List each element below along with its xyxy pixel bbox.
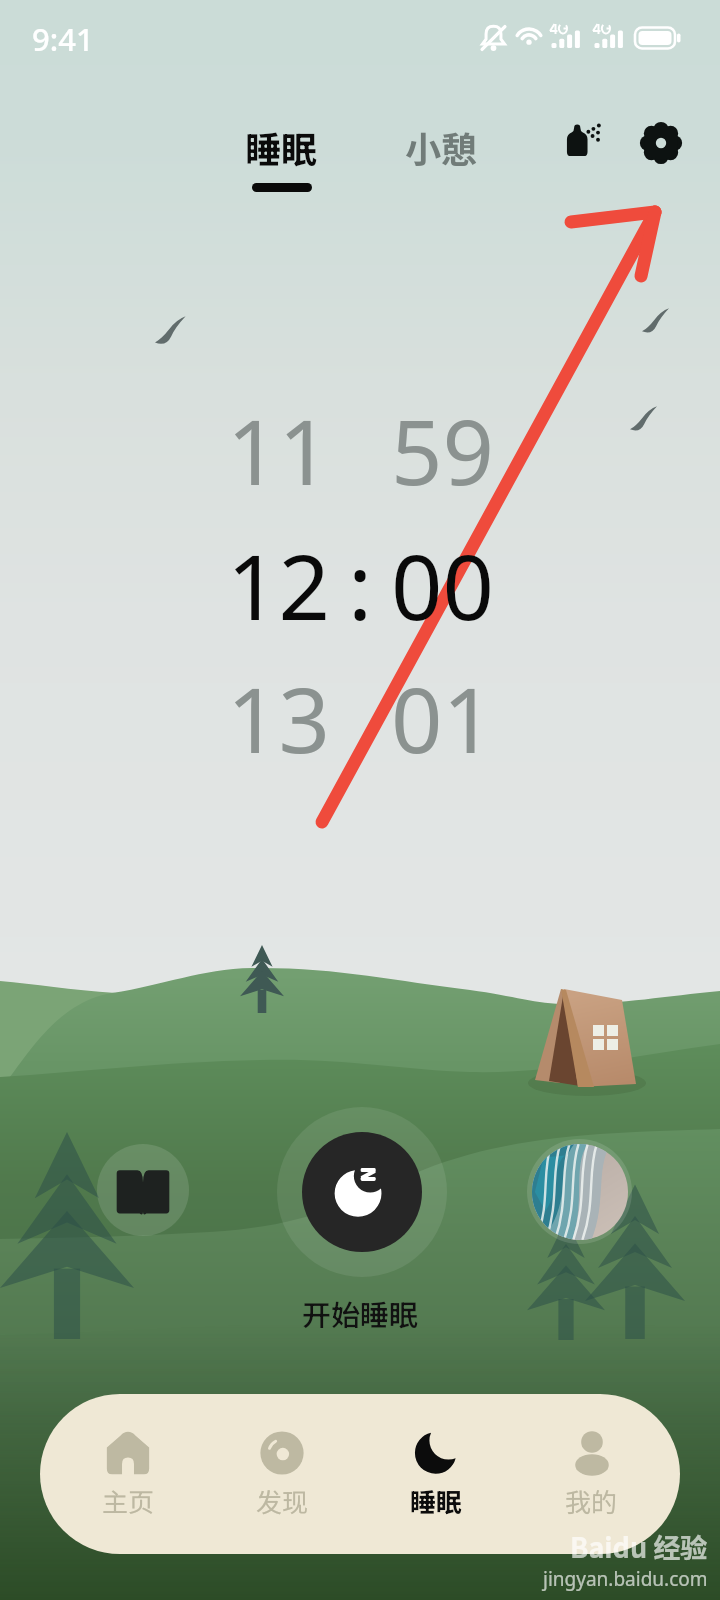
button[interactable]: 小憩 xyxy=(398,117,485,177)
staticText: 59 xyxy=(391,389,494,499)
button[interactable]: Start sleep xyxy=(302,1132,422,1252)
button[interactable]: 12 xyxy=(0,524,720,634)
staticText: 11 xyxy=(227,389,330,499)
button[interactable]: Sleep stories xyxy=(97,1144,189,1236)
staticText: Baidu 经验 xyxy=(570,1527,708,1566)
staticText: : xyxy=(348,524,373,634)
button[interactable]: 主页 xyxy=(51,1394,205,1554)
staticText: 00 xyxy=(391,524,494,634)
button[interactable]: 我的 xyxy=(514,1394,669,1554)
button[interactable]: 发现 xyxy=(205,1394,359,1554)
staticText: 小憩 xyxy=(405,121,478,173)
staticText: jingyan.baidu.com xyxy=(543,1566,708,1592)
staticText: 13 xyxy=(227,657,330,767)
staticText: 开始睡眠 xyxy=(302,1292,419,1334)
staticText: 01 xyxy=(391,657,494,767)
staticText: 12 xyxy=(227,524,330,634)
staticText: 发现 xyxy=(256,1482,309,1520)
button[interactable]: Settings xyxy=(632,114,689,171)
staticText: 睡眠 xyxy=(410,1482,463,1520)
staticText: 睡眠 xyxy=(245,121,318,173)
staticText: 9:41 xyxy=(32,18,94,60)
button[interactable]: Soundscapes xyxy=(527,1139,632,1244)
button[interactable]: 13 xyxy=(0,657,720,767)
button[interactable]: 睡眠 xyxy=(238,117,325,196)
staticText: 我的 xyxy=(565,1482,618,1520)
button[interactable]: 睡眠 xyxy=(359,1394,514,1554)
staticText: 主页 xyxy=(102,1482,155,1520)
button[interactable]: 11 xyxy=(0,389,720,499)
button[interactable]: Aroma diffuser xyxy=(558,114,612,168)
